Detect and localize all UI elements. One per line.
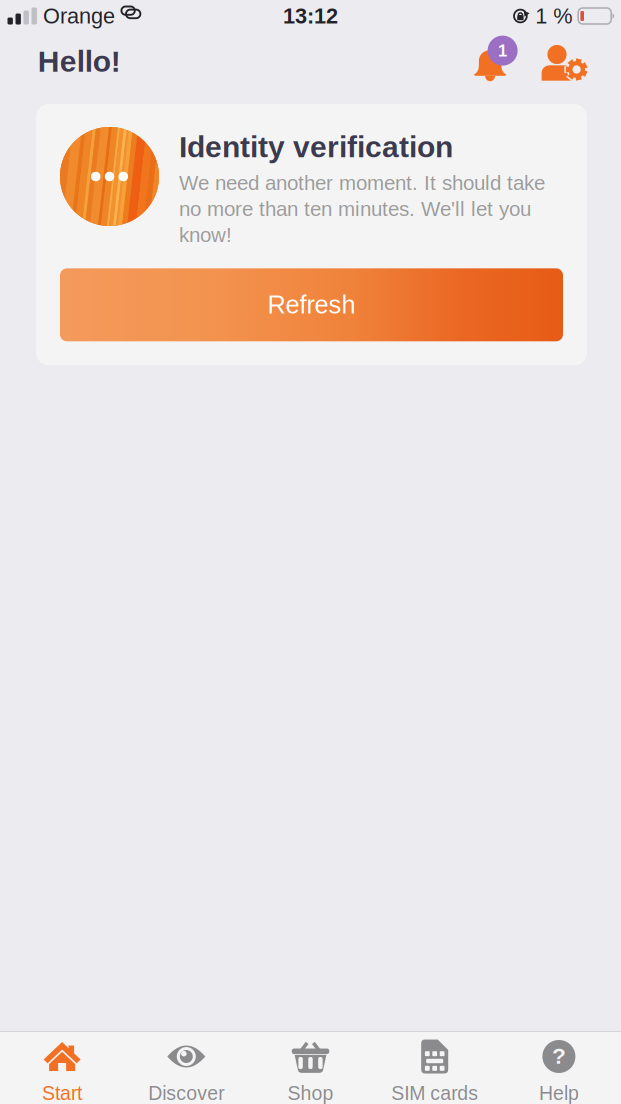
staticText: ? [552, 1043, 566, 1069]
staticText: 13:12 [283, 4, 338, 28]
staticText: Refresh [267, 291, 355, 319]
button[interactable]: Start [0, 1031, 124, 1104]
button[interactable]: ? [497, 1031, 621, 1104]
staticText: 1 % [535, 4, 572, 28]
staticText: Start [42, 1082, 82, 1104]
staticText: Discover [148, 1082, 224, 1104]
staticText: SIM cards [391, 1082, 478, 1104]
staticText: Orange [43, 4, 115, 28]
staticText: Hello! [38, 44, 121, 78]
staticText: We need another moment. It should take n… [179, 171, 545, 246]
button[interactable]: SIM cards [373, 1031, 497, 1104]
staticText: Identity verification [179, 130, 453, 163]
staticText: Shop [287, 1082, 333, 1104]
button[interactable]: Account settings [517, 32, 588, 81]
button[interactable]: Refresh [60, 268, 563, 341]
staticText: 1 [498, 41, 507, 60]
staticText: Help [539, 1082, 579, 1104]
button[interactable]: Shop [248, 1031, 373, 1104]
button[interactable]: Notifications [473, 32, 517, 83]
button[interactable]: Discover [124, 1031, 248, 1104]
